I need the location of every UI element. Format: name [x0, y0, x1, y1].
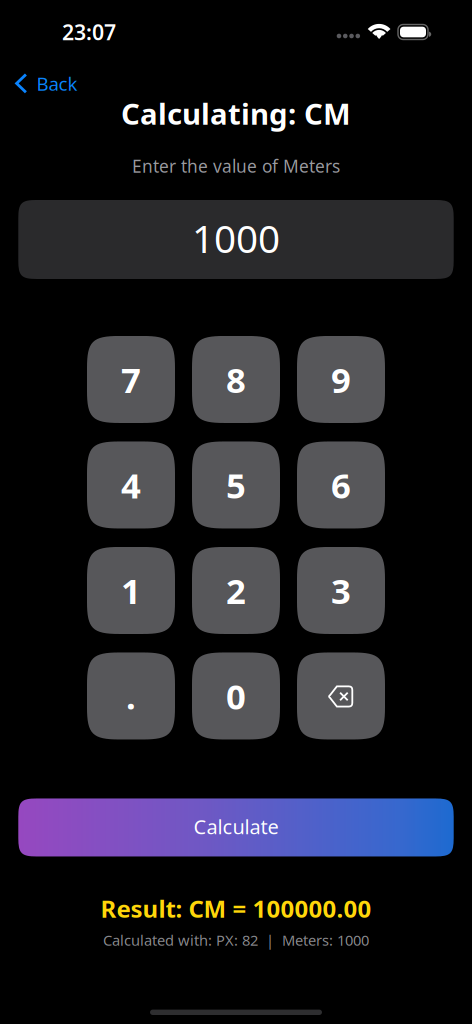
staticText: 1000	[192, 212, 280, 264]
button[interactable]: 0	[192, 652, 280, 739]
button[interactable]: 6	[297, 441, 385, 528]
button[interactable]: 7	[87, 336, 175, 423]
staticText: Calculated with: PX: 82 | Meters: 1000	[103, 930, 369, 950]
staticText: 23:07	[62, 18, 116, 46]
staticText: 3	[331, 567, 351, 613]
staticText: 1	[121, 567, 141, 613]
button[interactable]: 1	[87, 547, 175, 634]
staticText: 5	[226, 462, 246, 508]
staticText: Calculate	[193, 813, 278, 840]
staticText: 0	[226, 673, 246, 719]
staticText: 6	[331, 462, 351, 508]
staticText: 2	[226, 567, 246, 613]
button[interactable]: 2	[192, 547, 280, 634]
staticText: 8	[226, 356, 246, 402]
staticText: Calculating: CM	[121, 94, 351, 133]
button[interactable]: Delete	[297, 652, 385, 739]
button[interactable]: Back	[0, 73, 90, 94]
button[interactable]: 9	[297, 336, 385, 423]
staticText: .	[126, 673, 136, 719]
button[interactable]: 4	[87, 441, 175, 528]
button[interactable]: 3	[297, 547, 385, 634]
staticText: 4	[121, 462, 141, 508]
button[interactable]: 8	[192, 336, 280, 423]
staticText: 7	[121, 356, 141, 402]
staticText: 9	[331, 356, 351, 402]
button[interactable]: .	[87, 652, 175, 739]
button[interactable]: 5	[192, 441, 280, 528]
button[interactable]: Calculate	[0, 798, 472, 856]
staticText: Enter the value of Meters	[132, 154, 340, 177]
staticText: Back	[37, 71, 78, 96]
staticText: Result: CM = 100000.00	[100, 892, 371, 924]
